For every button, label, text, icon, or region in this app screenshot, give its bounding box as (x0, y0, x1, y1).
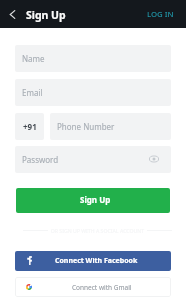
button[interactable]: Connect With Facebook (15, 251, 171, 271)
staticText: Connect With Facebook (55, 256, 138, 266)
button[interactable]: Show password (147, 152, 161, 166)
button[interactable]: +91 (15, 113, 44, 140)
staticText: Password (22, 154, 59, 165)
button[interactable]: Connect with Gmail (15, 277, 171, 297)
staticText: Email (22, 87, 43, 98)
staticText: Name (22, 53, 45, 64)
button[interactable]: Password (15, 146, 171, 173)
staticText: +91 (23, 121, 37, 132)
staticText: Phone Number (57, 121, 115, 132)
button[interactable]: Name (15, 45, 171, 72)
staticText: Connect with Gmail (72, 283, 132, 292)
button[interactable]: Back (2, 0, 22, 28)
button[interactable]: Email (15, 79, 171, 106)
button[interactable]: LOG IN (135, 0, 186, 28)
staticText: Sign Up (80, 194, 111, 205)
button[interactable]: Phone Number (50, 113, 171, 140)
staticText: Sign Up (26, 8, 66, 22)
staticText: OR SIGN UP WITH A SOCIAL ACCOUNT (48, 227, 147, 234)
staticText: LOG IN (147, 9, 174, 20)
button[interactable]: Sign Up (16, 188, 170, 213)
